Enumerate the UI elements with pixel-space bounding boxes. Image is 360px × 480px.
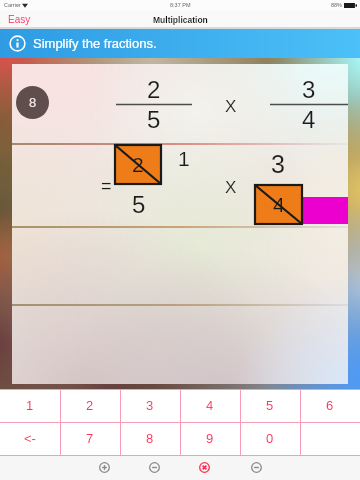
staticText: X [225,97,237,116]
staticText: 3 [302,76,316,103]
button[interactable]: 5 [240,389,300,422]
staticText: = [101,176,112,196]
button[interactable]: Multiply [193,456,215,478]
button[interactable]: 3 [120,389,180,422]
button[interactable]: Add [93,456,115,478]
staticText: 4 [273,193,285,216]
staticText: 2 [147,76,161,103]
staticText: 1 [178,147,190,170]
staticText: 8 [29,95,37,110]
staticText: <- [24,431,36,446]
staticText: 5 [132,191,146,218]
staticText: 4 [206,398,214,413]
button[interactable]: Subtract [143,456,165,478]
staticText: X [225,178,237,197]
staticText: 2 [86,398,94,413]
staticText: Carrier [4,2,21,8]
staticText: 0 [266,431,274,446]
staticText: 5 [147,106,161,133]
button[interactable]: 6 [300,389,360,422]
staticText: Easy [8,14,31,25]
staticText: 2 [132,153,144,176]
staticText: 4 [302,106,316,133]
button[interactable] [300,422,360,455]
button[interactable]: Easy [0,10,40,29]
staticText: Multiplication [153,15,208,24]
button[interactable]: <- [0,422,60,455]
button[interactable]: Divide [245,456,267,478]
staticText: 9 [206,431,214,446]
button[interactable]: 8 [16,86,49,119]
button[interactable]: 8 [120,422,180,455]
staticText: 8:37 PM [170,2,191,8]
button[interactable]: 4 [180,389,240,422]
button[interactable]: 0 [240,422,300,455]
staticText: 3 [271,150,285,178]
button[interactable]: 7 [60,422,120,455]
button[interactable]: 9 [180,422,240,455]
staticText: 88% [331,2,343,8]
staticText: Simplify the fractions. [33,36,157,51]
staticText: 1 [26,398,34,413]
staticText: 6 [326,398,334,413]
button[interactable]: 1 [0,389,60,422]
staticText: 8 [146,431,154,446]
button[interactable]: 2 [60,389,120,422]
staticText: 3 [146,398,154,413]
staticText: 7 [86,431,94,446]
staticText: 5 [266,398,274,413]
